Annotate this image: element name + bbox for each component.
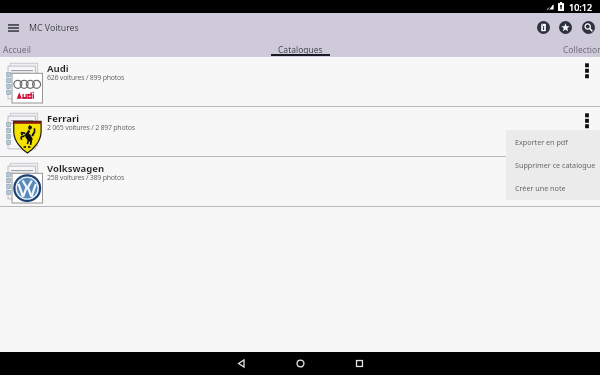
staticText: Accueil (3, 44, 32, 56)
button[interactable]: Catalogs (537, 21, 550, 34)
button[interactable]: More options (578, 158, 596, 182)
staticText: 626 voitures / 899 photos (47, 73, 125, 83)
button[interactable]: More options (578, 108, 596, 132)
staticText: Ferrari (47, 112, 79, 125)
button[interactable]: Exporter en pdf (506, 130, 600, 153)
button[interactable]: Recent apps (343, 352, 375, 375)
button[interactable]: Collection (528, 42, 600, 57)
staticText: Audi (47, 62, 69, 75)
button[interactable]: Supprimer ce catalogue (506, 153, 600, 176)
staticText: Catalogues (278, 44, 323, 56)
staticText: 2 065 voitures / 2 897 photos (47, 123, 135, 133)
button[interactable]: Favorites (559, 21, 572, 34)
button[interactable]: Ferrari (0, 107, 600, 157)
button[interactable]: Catalogues (245, 42, 355, 57)
button[interactable]: Audi (0, 57, 600, 107)
button[interactable]: Volkswagen (0, 157, 600, 207)
staticText: Collection (563, 44, 600, 56)
staticText: Supprimer ce catalogue (515, 160, 596, 170)
button[interactable]: More options (578, 58, 596, 82)
staticText: Volkswagen (47, 162, 105, 175)
staticText: 10:12 (569, 1, 593, 13)
button[interactable]: Search (582, 21, 595, 34)
button[interactable]: Home (284, 352, 316, 375)
button[interactable]: Back (225, 352, 257, 375)
staticText: Exporter en pdf (515, 137, 568, 147)
staticText: MC Voitures (29, 22, 79, 34)
staticText: Créer une note (515, 183, 566, 193)
staticText: 258 voitures / 389 photos (47, 173, 125, 183)
button[interactable]: Navigation menu (4, 18, 23, 37)
button[interactable]: Créer une note (506, 176, 600, 199)
button[interactable]: Accueil (0, 42, 72, 57)
